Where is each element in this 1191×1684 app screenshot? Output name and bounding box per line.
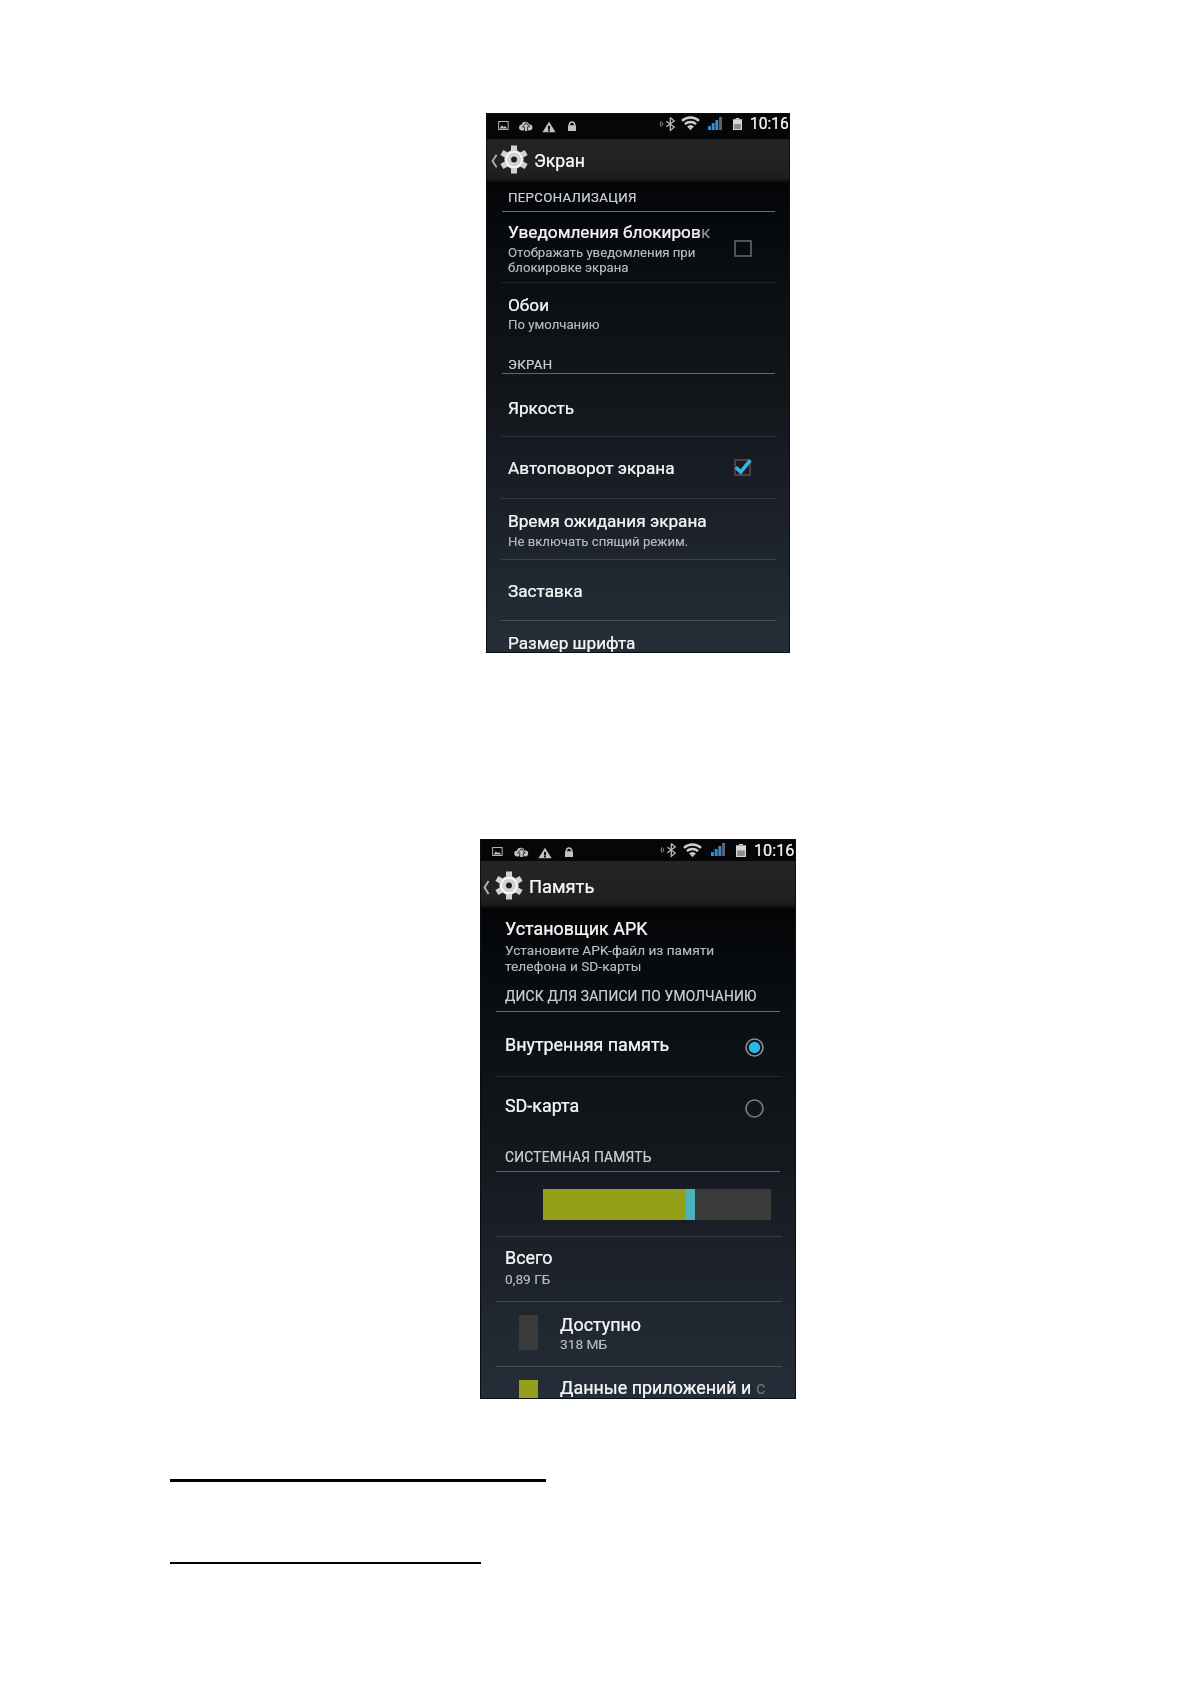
staticText: СИСТЕМНАЯ ПАМЯТЬ — [505, 1149, 652, 1165]
staticText: Отображать уведомления при — [508, 245, 696, 260]
staticText: 10:16 — [754, 841, 795, 860]
staticText: Время ожидания экрана — [508, 511, 707, 531]
staticText: Размер шрифта — [508, 633, 636, 653]
button[interactable]: Внутренняя память — [480, 1012, 796, 1077]
staticText: Данные приложений и — [560, 1377, 752, 1398]
staticText: ЭКРАН — [508, 357, 553, 372]
staticText: Внутренняя память — [505, 1034, 670, 1055]
button[interactable]: Данные приложений и — [480, 1367, 796, 1399]
button[interactable]: Показывать уведомления — [735, 241, 751, 256]
button[interactable]: Яркость — [486, 379, 790, 436]
staticText: с — [756, 1377, 766, 1398]
staticText: 318 МБ — [560, 1336, 608, 1352]
staticText: Всего — [505, 1247, 553, 1268]
button[interactable]: Доступно — [480, 1302, 796, 1366]
staticText: Установщик APK — [505, 918, 648, 939]
button[interactable]: SD-карта не выбрана — [745, 1099, 764, 1118]
button[interactable]: Внутренняя память выбрана — [745, 1038, 764, 1057]
button[interactable]: Автоповорот экрана включён — [735, 460, 750, 475]
staticText: Уведомления блокиров — [508, 222, 701, 242]
button[interactable]: Установщик APK — [480, 908, 796, 976]
button[interactable]: Заставка — [486, 560, 790, 620]
button[interactable]: Экран — вверх — [486, 139, 790, 184]
staticText: Автоповорот экрана — [508, 458, 675, 478]
staticText: 0,89 ГБ — [505, 1271, 551, 1287]
staticText: Не включать спящий режим. — [508, 534, 689, 549]
staticText: 10:16 — [750, 115, 789, 133]
staticText: блокировке экрана — [508, 260, 629, 275]
button[interactable]: Размер шрифта — [486, 621, 790, 653]
button[interactable]: SD-карта — [480, 1077, 796, 1138]
button[interactable]: Время ожидания экрана — [486, 499, 790, 559]
staticText: По умолчанию — [508, 317, 600, 332]
staticText: Память — [529, 876, 595, 897]
button[interactable]: Автоповорот экрана — [486, 437, 790, 498]
staticText: Доступно — [560, 1314, 642, 1335]
staticText: Экран — [534, 151, 585, 172]
button[interactable]: Память — вверх — [480, 861, 796, 910]
staticText: SD-карта — [505, 1095, 580, 1116]
staticText: ДИСК ДЛЯ ЗАПИСИ ПО УМОЛЧАНИЮ — [505, 988, 757, 1004]
button[interactable]: Обои — [486, 283, 790, 345]
staticText: ПЕРСОНАЛИЗАЦИЯ — [508, 190, 637, 205]
staticText: Яркость — [508, 398, 575, 418]
button[interactable]: Всего — [480, 1237, 796, 1301]
staticText: Установите APK-файл из памяти — [505, 942, 715, 958]
staticText: телефона и SD-карты — [505, 958, 642, 974]
staticText: Обои — [508, 295, 550, 315]
staticText: к — [701, 222, 711, 242]
staticText: Заставка — [508, 581, 583, 601]
button[interactable]: Уведомления блокиров — [486, 212, 790, 282]
